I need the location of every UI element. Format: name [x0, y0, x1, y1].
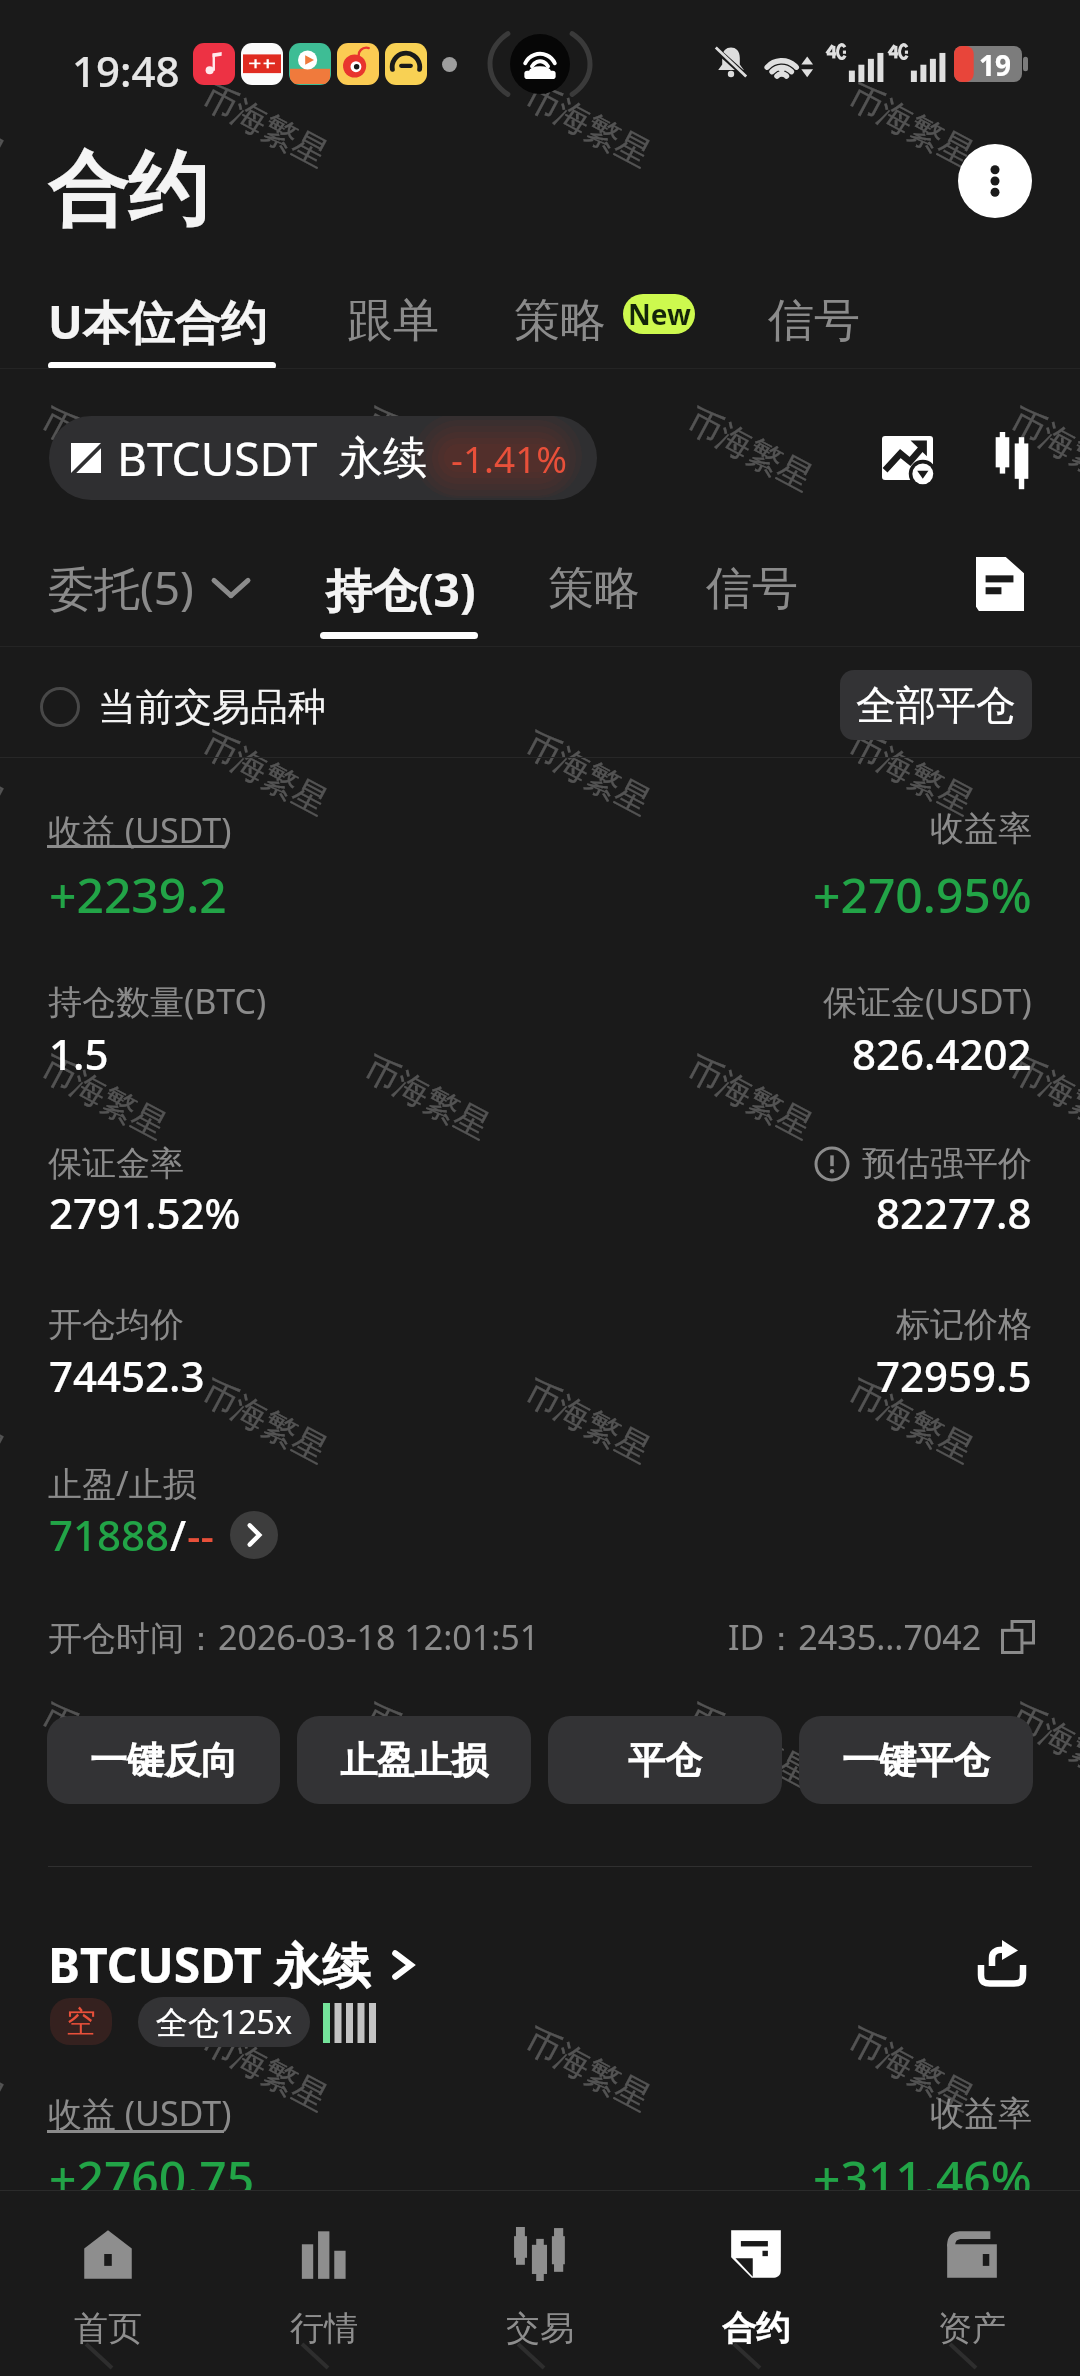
staticText: U本位合约 — [48, 290, 267, 353]
staticText: 币海繁星 — [1003, 1695, 1080, 1796]
button[interactable]: 首页 — [0, 2191, 216, 2376]
staticText: -- — [187, 1506, 214, 1563]
staticText: 币海繁星 — [518, 723, 658, 824]
staticText: 币海繁星 — [680, 2343, 820, 2376]
staticText: 全部平仓 — [856, 680, 1016, 730]
staticText: 保证金(USDT) — [823, 978, 1032, 1024]
staticText: 币海繁星 — [34, 2343, 174, 2376]
button[interactable]: More options — [958, 144, 1032, 218]
button[interactable]: New — [623, 294, 695, 334]
button[interactable]: Order history — [970, 554, 1030, 614]
button[interactable]: Copy ID — [998, 1617, 1038, 1657]
staticText: 首页 — [74, 2307, 142, 2350]
staticText: 币海繁星 — [841, 1371, 981, 1472]
button[interactable]: Candlesticks — [978, 424, 1046, 492]
staticText: 币海繁星 — [357, 1695, 497, 1796]
staticText: 币海繁星 — [1003, 1047, 1080, 1148]
staticText: 持仓数量(BTC) — [48, 978, 267, 1024]
staticText: 交易 — [506, 2307, 574, 2350]
staticText: 止盈/止损 — [48, 1460, 197, 1506]
staticText: 币海繁星 — [0, 723, 12, 824]
button[interactable]: 平仓 — [548, 1716, 782, 1804]
button[interactable]: Share — [972, 1930, 1032, 1990]
staticText: 当前交易品种 — [98, 683, 326, 731]
button[interactable]: 全部平仓 — [840, 670, 1032, 740]
staticText: 收益率 — [930, 807, 1032, 850]
staticText: 币海繁星 — [34, 399, 174, 500]
staticText: 标记价格 — [896, 1303, 1032, 1346]
button[interactable]: 资产 — [864, 2191, 1080, 2376]
staticText: 持仓(3) — [326, 558, 476, 621]
staticText: 开仓均价 — [48, 1303, 184, 1346]
staticText: 收益率 — [930, 2092, 1032, 2135]
staticText: 保证金率 — [48, 1142, 184, 1185]
button[interactable]: 止盈止损 — [297, 1716, 531, 1804]
button[interactable]: 合约 — [648, 2191, 864, 2376]
button[interactable]: Chart — [873, 424, 941, 492]
staticText: New — [628, 295, 691, 333]
staticText: 平仓 — [628, 1737, 702, 1784]
staticText: 币海繁星 — [680, 1047, 820, 1148]
button[interactable]: 交易 — [432, 2191, 648, 2376]
staticText: 委托(5) — [48, 556, 194, 619]
staticText: 币海繁星 — [841, 75, 981, 176]
staticText: 74452.3 — [49, 1347, 205, 1404]
button[interactable]: 策略 — [514, 292, 606, 350]
button[interactable]: 持仓(3) — [326, 558, 476, 621]
button[interactable]: 71888 — [49, 1506, 278, 1563]
staticText: 币海繁星 — [841, 723, 981, 824]
button[interactable]: 信号 — [706, 560, 798, 618]
button[interactable]: 信号 — [768, 292, 860, 350]
staticText: 全仓125x — [156, 2000, 292, 2044]
button[interactable]: 一键平仓 — [799, 1716, 1033, 1804]
staticText: 币海繁星 — [195, 2019, 335, 2120]
staticText: 开仓时间：2026-03-18 12:01:51 — [48, 1614, 540, 1660]
staticText: 71888 — [49, 1506, 170, 1563]
staticText: 币海繁星 — [680, 399, 820, 500]
staticText: 币海繁星 — [680, 1695, 820, 1796]
button[interactable]: 跟单 — [347, 292, 439, 350]
staticText: +2760.75 — [49, 2145, 255, 2210]
staticText: 币海繁星 — [34, 1047, 174, 1148]
staticText: 币海繁星 — [1003, 399, 1080, 500]
staticText: 合约 — [722, 2307, 790, 2350]
staticText: 信号 — [768, 292, 860, 350]
staticText: 2791.52% — [49, 1184, 241, 1241]
staticText: BTCUSDT 永续 — [48, 1932, 371, 1998]
staticText: 72959.5 — [876, 1347, 1032, 1404]
staticText: 19 — [979, 46, 1012, 82]
staticText: ID：2435...7042 — [728, 1614, 982, 1660]
staticText: 币海繁星 — [518, 1371, 658, 1472]
staticText: 一键反向 — [90, 1737, 238, 1784]
staticText: 1.5 — [49, 1025, 109, 1082]
staticText: 币海繁星 — [0, 1371, 12, 1472]
staticText: 币海繁星 — [195, 723, 335, 824]
staticText: 策略 — [514, 292, 606, 350]
button[interactable]: 委托(5) — [48, 556, 250, 619]
staticText: 空 — [66, 2003, 96, 2041]
staticText: 跟单 — [347, 292, 439, 350]
button[interactable]: 当前交易品种 — [36, 679, 330, 735]
staticText: BTCUSDT — [117, 427, 318, 490]
button[interactable]: BTCUSDT 永续 — [48, 1932, 417, 1998]
button[interactable]: BTCUSDT — [49, 416, 597, 500]
button[interactable]: 行情 — [216, 2191, 432, 2376]
button[interactable]: U本位合约 — [48, 290, 267, 353]
button[interactable]: 策略 — [548, 560, 640, 618]
staticText: 币海繁星 — [34, 1695, 174, 1796]
staticText: 币海繁星 — [518, 2019, 658, 2120]
staticText: -1.41% — [451, 433, 568, 483]
staticText: 币海繁星 — [357, 1047, 497, 1148]
staticText: / — [170, 1506, 187, 1563]
staticText: 826.4202 — [852, 1025, 1032, 1082]
button[interactable]: 一键反向 — [47, 1716, 280, 1804]
staticText: 预估强平价 — [862, 1142, 1032, 1185]
staticText: 一键平仓 — [842, 1737, 990, 1784]
staticText: 币海繁星 — [0, 2019, 12, 2120]
staticText: 82277.8 — [876, 1184, 1032, 1241]
staticText: 永续 — [339, 431, 427, 486]
staticText: +270.95% — [813, 862, 1032, 927]
staticText: 收益 (USDT) — [48, 2090, 232, 2136]
staticText: 信号 — [706, 560, 798, 618]
